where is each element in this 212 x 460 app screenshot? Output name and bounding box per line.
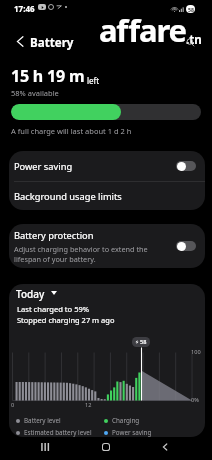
staticText: 17:46 bbox=[14, 3, 35, 14]
button[interactable]: Toggle bbox=[176, 161, 196, 171]
button[interactable]: Battery protection bbox=[9, 224, 205, 268]
button[interactable]: Navigate up bbox=[7, 30, 33, 52]
button[interactable]: Toggle bbox=[176, 241, 196, 251]
staticText: 100 bbox=[191, 348, 201, 356]
staticText: Power saving bbox=[112, 428, 152, 437]
staticText: 58 bbox=[140, 338, 147, 346]
staticText: 58% available bbox=[11, 88, 59, 98]
button[interactable]: Today bbox=[14, 285, 59, 303]
staticText: 15 h 19 m bbox=[11, 65, 85, 87]
button[interactable]: Back bbox=[151, 437, 179, 457]
staticText: Battery protection bbox=[14, 229, 94, 242]
staticText: 0 bbox=[11, 401, 15, 409]
staticText: Battery level bbox=[24, 416, 61, 425]
staticText: 12 bbox=[85, 401, 92, 409]
staticText: Estimated battery level bbox=[24, 428, 92, 437]
staticText: A full charge will last about 1 d 2 h bbox=[11, 126, 132, 136]
button[interactable]: Power saving bbox=[9, 151, 205, 181]
button[interactable]: Recent apps bbox=[31, 437, 59, 457]
staticText: Power saving bbox=[14, 160, 73, 173]
button[interactable]: Background usage limits bbox=[9, 182, 205, 210]
staticText: Battery bbox=[30, 35, 74, 51]
staticText: Charging bbox=[112, 416, 140, 425]
staticText: Today bbox=[16, 287, 45, 301]
staticText: Last charged to 59% bbox=[17, 304, 90, 314]
staticText: affare bbox=[99, 9, 186, 51]
staticText: Adjust charging behavior to extend the l… bbox=[14, 244, 170, 264]
staticText: Stopped charging 27 m ago bbox=[17, 315, 115, 325]
staticText: 0% bbox=[191, 396, 199, 404]
staticText: left bbox=[87, 75, 100, 86]
staticText: 58 bbox=[188, 6, 194, 13]
staticText: .tn bbox=[186, 32, 202, 48]
staticText: Background usage limits bbox=[14, 190, 122, 203]
button[interactable]: Home bbox=[92, 437, 120, 457]
